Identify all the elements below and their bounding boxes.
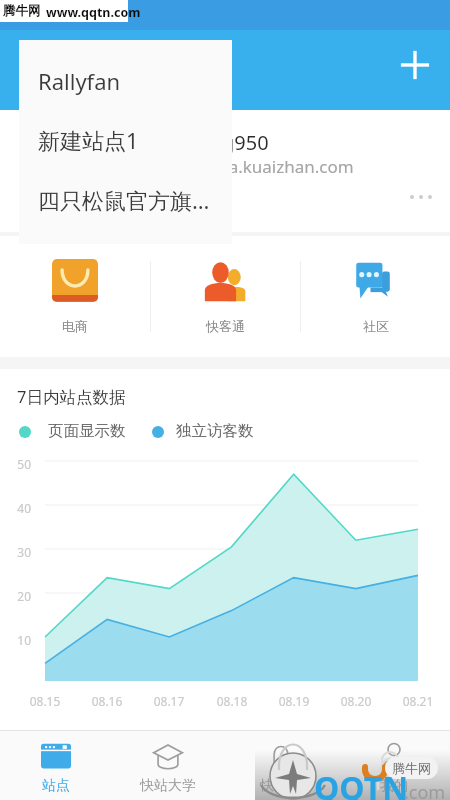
button[interactable]: 四只松鼠官方旗舰店铺g950 xyxy=(0,110,450,232)
button[interactable]: 快客通 xyxy=(151,236,300,357)
staticText: 电商 xyxy=(62,318,88,334)
staticText: 我的 xyxy=(380,777,408,795)
staticText: 08.15 xyxy=(23,693,67,709)
staticText: 新建站点1 xyxy=(38,125,139,155)
staticText: 快客通 xyxy=(206,318,245,334)
staticText: 08.17 xyxy=(147,693,191,709)
button[interactable]: 社区 xyxy=(301,236,450,357)
staticText: 页面显示数 xyxy=(48,421,126,441)
button[interactable]: Rallyfan xyxy=(19,51,232,110)
staticText: 08.16 xyxy=(85,693,129,709)
staticText: 50 xyxy=(8,456,31,472)
staticText: 08.18 xyxy=(210,693,254,709)
button[interactable]: 快站大学 xyxy=(112,731,224,800)
staticText: 社区 xyxy=(363,318,389,334)
staticText: 腾牛网 xyxy=(392,760,431,776)
staticText: 四只松鼠官方旗… xyxy=(38,185,210,215)
staticText: 腾牛网 xyxy=(3,3,41,19)
button[interactable]: 四只松鼠官方旗… xyxy=(19,170,232,229)
staticText: 四只松鼠官方旗舰店铺g950 xyxy=(22,129,269,156)
staticText: 08.19 xyxy=(272,693,316,709)
staticText: 08.21 xyxy=(396,693,440,709)
staticText: 独立访客数 xyxy=(176,421,254,441)
button[interactable]: 新建站点1 xyxy=(19,110,232,169)
staticText: 快站大学 xyxy=(140,777,196,795)
staticText: 40 xyxy=(8,500,31,516)
staticText: .com xyxy=(404,780,446,800)
staticText: 站点 xyxy=(42,777,70,795)
button[interactable]: More options xyxy=(404,180,438,214)
staticText: QQTN xyxy=(314,766,409,800)
staticText: sizhisongshudianpuguanfa.kuaizhan.com xyxy=(22,155,354,178)
staticText: 10 xyxy=(8,632,31,648)
button[interactable]: Add site xyxy=(392,42,438,88)
staticText: 7日内站点数据 xyxy=(17,385,126,408)
staticText: 20 xyxy=(8,588,31,604)
staticText: Rallyfan xyxy=(38,66,121,96)
button[interactable]: 我的 xyxy=(337,731,450,800)
staticText: 08.20 xyxy=(334,693,378,709)
staticText: 快应用 xyxy=(260,777,302,795)
button[interactable]: 电商 xyxy=(0,236,150,357)
staticText: 30 xyxy=(8,544,31,560)
button[interactable]: 站点 xyxy=(0,731,112,800)
staticText: www.qqtn.com xyxy=(46,4,141,21)
button[interactable]: 快应用 xyxy=(224,731,337,800)
